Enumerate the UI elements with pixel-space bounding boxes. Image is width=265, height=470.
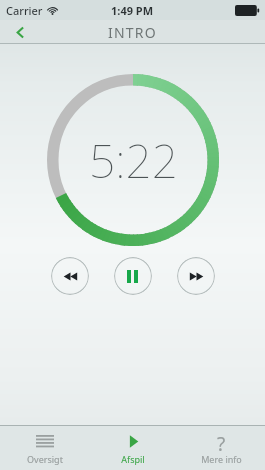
button[interactable]: ? xyxy=(177,426,265,470)
staticText: INTRO xyxy=(108,23,157,42)
button[interactable]: Rewind xyxy=(51,257,89,295)
button[interactable]: Pause xyxy=(114,257,152,295)
button[interactable]: Afspil xyxy=(89,426,177,470)
staticText: Mere info xyxy=(201,453,242,465)
staticText: ? xyxy=(217,431,226,451)
button[interactable]: Oversigt xyxy=(0,426,89,470)
button[interactable]: Fast forward xyxy=(177,257,215,295)
staticText: 1:49 PM xyxy=(111,3,154,18)
staticText: Carrier xyxy=(6,3,43,18)
staticText: 5:22 xyxy=(89,129,178,192)
staticText: Afspil xyxy=(121,453,145,465)
button[interactable]: Back xyxy=(0,20,40,44)
staticText: Oversigt xyxy=(27,453,63,465)
